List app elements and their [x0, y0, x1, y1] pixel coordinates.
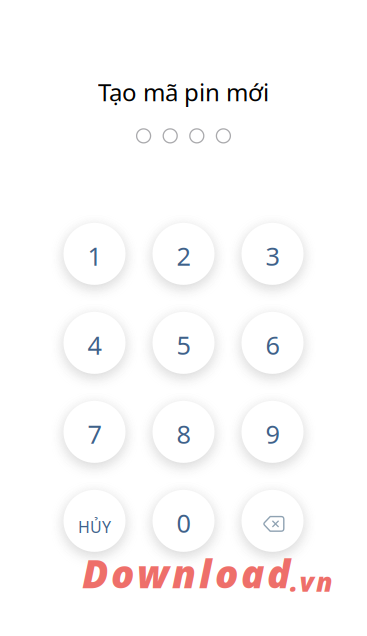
staticText: HỦY — [78, 516, 111, 537]
button[interactable]: 4 — [63, 312, 125, 374]
staticText: Download — [82, 548, 290, 599]
button[interactable]: HỦY — [63, 490, 125, 552]
button[interactable]: 2 — [152, 223, 214, 285]
staticText: 9 — [265, 417, 279, 451]
button[interactable]: 6 — [241, 312, 303, 374]
staticText: Tạo mã pin mới — [98, 76, 269, 108]
staticText: 5 — [176, 328, 190, 362]
button[interactable]: 0 — [152, 490, 214, 552]
staticText: .vn — [290, 564, 333, 599]
button[interactable]: 5 — [152, 312, 214, 374]
staticText: 8 — [176, 417, 190, 451]
staticText: 4 — [87, 328, 101, 362]
button[interactable]: 9 — [241, 401, 303, 463]
staticText: 2 — [176, 239, 190, 273]
button[interactable]: Delete — [241, 490, 303, 552]
staticText: 6 — [265, 328, 279, 362]
button[interactable]: 1 — [63, 223, 125, 285]
staticText: 0 — [176, 506, 190, 540]
button[interactable]: 8 — [152, 401, 214, 463]
staticText: 1 — [87, 239, 101, 273]
button[interactable]: 7 — [63, 401, 125, 463]
button[interactable]: 3 — [241, 223, 303, 285]
staticText: 7 — [87, 417, 101, 451]
staticText: 3 — [265, 239, 279, 273]
